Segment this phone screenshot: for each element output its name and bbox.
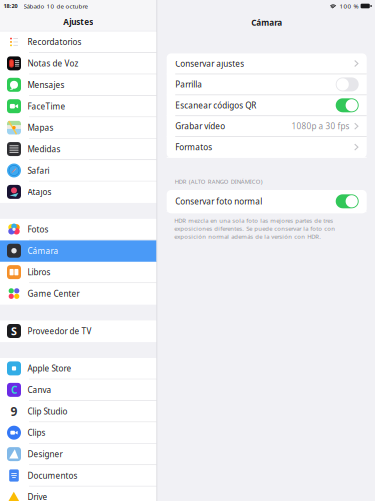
staticText: HDR (ALTO RANGO DINÁMICO) xyxy=(175,177,263,185)
staticText: Medidas xyxy=(27,143,60,155)
staticText: Mapas xyxy=(27,122,53,133)
button[interactable]: Designer xyxy=(0,444,156,465)
staticText: Clips xyxy=(27,427,45,438)
staticText: Cámara xyxy=(27,245,58,256)
button[interactable]: Safari xyxy=(0,160,156,181)
staticText: Libros xyxy=(27,267,50,278)
staticText: Documentos xyxy=(27,470,77,481)
staticText: Recordatorios xyxy=(27,36,81,47)
staticText: Proveedor de TV xyxy=(27,325,91,337)
button[interactable]: Libros xyxy=(0,262,156,283)
button[interactable]: Medidas xyxy=(0,139,156,160)
staticText: S xyxy=(11,324,17,338)
button[interactable]: Drive xyxy=(0,487,156,501)
staticText: Mensajes xyxy=(27,79,64,90)
button[interactable]: Mapas xyxy=(0,117,156,139)
button[interactable]: Documentos xyxy=(0,465,156,487)
staticText: Safari xyxy=(27,165,49,176)
button[interactable]: Recordatorios xyxy=(0,32,156,53)
staticText: 100 % xyxy=(340,2,359,10)
staticText: Parrilla xyxy=(175,79,202,90)
staticText: Clip Studio xyxy=(27,406,67,417)
staticText: Conservar ajustes xyxy=(175,58,244,69)
button[interactable]: Conservar ajustes xyxy=(167,53,367,74)
staticText: Fotos xyxy=(27,224,48,235)
button[interactable]: Cámara xyxy=(0,240,156,262)
button[interactable]: Formatos xyxy=(167,137,367,158)
staticText: Escanear códigos QR xyxy=(175,100,256,111)
staticText: Sábado 10 de octubre xyxy=(23,2,87,10)
button[interactable]: Grabar vídeo xyxy=(167,116,367,137)
button[interactable]: Game Center xyxy=(0,283,156,305)
button[interactable]: Atajos xyxy=(0,181,156,203)
button[interactable]: Mensajes xyxy=(0,74,156,96)
button[interactable]: C xyxy=(0,379,156,401)
staticText: Drive xyxy=(27,491,47,501)
staticText: Designer xyxy=(27,449,62,460)
button[interactable]: Apple Store xyxy=(0,358,156,379)
staticText: C xyxy=(11,383,17,397)
staticText: FaceTime xyxy=(27,101,65,112)
staticText: 9 xyxy=(10,403,17,419)
button[interactable]: FaceTime xyxy=(0,96,156,117)
staticText: Grabar vídeo xyxy=(175,121,225,132)
staticText: Notas de Voz xyxy=(27,58,78,69)
button[interactable]: Fotos xyxy=(0,219,156,240)
staticText: Cámara xyxy=(251,17,282,28)
button[interactable]: S xyxy=(0,321,156,342)
button[interactable]: Conservar foto normal xyxy=(167,191,367,212)
button[interactable]: Escanear códigos QR xyxy=(167,95,367,116)
staticText: Game Center xyxy=(27,288,79,299)
button[interactable]: Clips xyxy=(0,422,156,444)
staticText: Atajos xyxy=(27,186,51,197)
staticText: 1080p a 30 fps xyxy=(292,121,350,132)
button[interactable]: Notas de Voz xyxy=(0,53,156,74)
staticText: Conservar foto normal xyxy=(175,196,262,207)
staticText: Apple Store xyxy=(27,363,71,374)
staticText: Formatos xyxy=(175,142,212,153)
staticText: HDR mezcla en una sola foto las mejores … xyxy=(174,216,335,240)
button[interactable]: Parrilla xyxy=(167,74,367,95)
staticText: Canva xyxy=(27,384,51,395)
staticText: Ajustes xyxy=(63,16,93,27)
staticText: 18:20 xyxy=(3,2,17,10)
button[interactable]: 9 xyxy=(0,401,156,422)
